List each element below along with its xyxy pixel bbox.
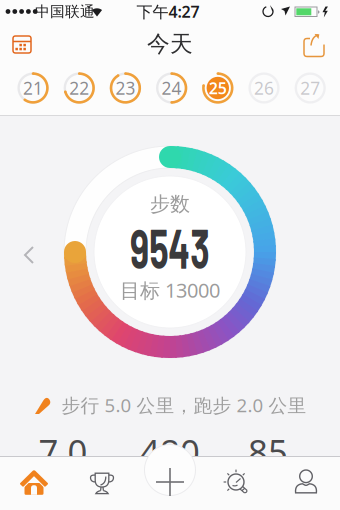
- staticText: 步数: [150, 192, 190, 216]
- staticText: 480: [140, 428, 200, 474]
- button[interactable]: [225, 471, 249, 495]
- staticText: 今天: [147, 30, 193, 58]
- staticText: 85: [248, 428, 288, 474]
- button[interactable]: 27: [294, 72, 326, 104]
- button[interactable]: 24: [156, 72, 188, 104]
- staticText: 21: [23, 76, 43, 99]
- staticText: 9543: [109, 214, 230, 280]
- staticText: 7.0: [38, 428, 87, 474]
- staticText: 26: [254, 76, 274, 99]
- staticText: 中国联通: [35, 2, 95, 20]
- button[interactable]: [11, 33, 33, 56]
- staticText: 下午4:27: [136, 1, 199, 22]
- button[interactable]: [20, 470, 48, 496]
- button[interactable]: [89, 469, 115, 495]
- button[interactable]: 26: [248, 72, 280, 104]
- button[interactable]: 25: [202, 72, 234, 104]
- staticText: 23: [115, 76, 135, 99]
- button[interactable]: 22: [63, 72, 95, 104]
- staticText: 27: [300, 76, 320, 99]
- button[interactable]: [144, 444, 196, 496]
- staticText: 步行 5.0 公里，跑步 2.0 公里: [61, 393, 306, 417]
- staticText: 22: [69, 76, 89, 99]
- button[interactable]: [21, 245, 37, 265]
- staticText: 24: [162, 76, 182, 99]
- staticText: 25: [209, 77, 227, 99]
- button[interactable]: [302, 31, 326, 58]
- button[interactable]: [295, 470, 317, 494]
- button[interactable]: 21: [17, 72, 49, 104]
- staticText: 目标 13000: [120, 277, 220, 303]
- button[interactable]: 23: [109, 72, 141, 104]
